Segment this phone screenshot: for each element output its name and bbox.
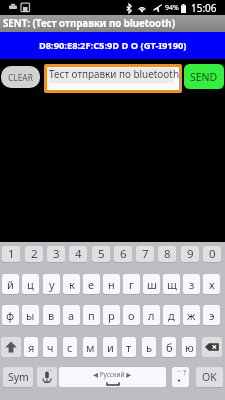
staticText: 2	[31, 246, 38, 262]
button[interactable]: OK	[196, 367, 223, 387]
staticText: Sym	[8, 370, 29, 384]
button[interactable]: х	[203, 274, 220, 294]
button[interactable]: б	[162, 337, 176, 357]
staticText: SEND	[190, 70, 218, 84]
button[interactable]: 8	[158, 246, 176, 262]
staticText: D8:90:E8:2F:C5:9D D O (GT-I9190)	[39, 39, 187, 52]
button[interactable]: 0	[203, 246, 221, 262]
staticText: х	[209, 277, 215, 292]
button[interactable]: Space	[59, 367, 166, 387]
staticText: щ	[167, 277, 177, 292]
button[interactable]: у	[43, 274, 60, 294]
button[interactable]: к	[63, 274, 80, 294]
button[interactable]: ч	[43, 337, 57, 357]
button[interactable]: 9	[181, 246, 199, 262]
staticText: й	[7, 277, 14, 292]
button[interactable]: Voice input	[37, 367, 57, 387]
staticText: л	[148, 308, 155, 323]
staticText: 7	[142, 246, 149, 262]
staticText: 3	[53, 246, 60, 262]
button[interactable]: ь	[142, 337, 156, 357]
staticText: 0	[209, 246, 216, 262]
button[interactable]: щ	[163, 274, 180, 294]
staticText: г	[129, 277, 134, 292]
button[interactable]: ю	[182, 337, 196, 357]
staticText: б	[166, 340, 173, 355]
button[interactable]: 3	[47, 246, 65, 262]
staticText: н	[108, 277, 115, 292]
staticText: 8	[164, 246, 171, 262]
staticText: з	[189, 277, 195, 292]
button[interactable]: а	[63, 305, 80, 325]
staticText: 1	[8, 246, 15, 262]
staticText: 9	[187, 246, 194, 262]
staticText: ф	[6, 308, 15, 323]
staticText: Тест отправки по bluetooth	[49, 67, 179, 80]
button[interactable]: н	[103, 274, 120, 294]
button[interactable]: Shift	[1, 337, 21, 357]
staticText: ж	[187, 308, 196, 323]
button[interactable]: SEND	[184, 64, 224, 89]
staticText: е	[88, 277, 95, 292]
button[interactable]: й	[2, 274, 19, 294]
staticText: ?	[183, 368, 187, 378]
button[interactable]: и	[103, 337, 117, 357]
button[interactable]: д	[163, 305, 180, 325]
staticText: ь	[146, 340, 152, 355]
button[interactable]: 7	[136, 246, 154, 262]
button[interactable]: ш	[143, 274, 160, 294]
button[interactable]: Backspace	[202, 337, 222, 357]
button[interactable]: 2	[25, 246, 43, 262]
staticText: у	[49, 277, 55, 292]
button[interactable]: л	[143, 305, 160, 325]
button[interactable]: р	[103, 305, 120, 325]
staticText: в	[48, 308, 55, 323]
button[interactable]: е	[83, 274, 100, 294]
button[interactable]: ц	[22, 274, 39, 294]
button[interactable]: CLEAR	[1, 66, 40, 88]
staticText: 15:06	[191, 1, 217, 15]
staticText: м	[86, 340, 95, 355]
button[interactable]: Punctuation	[172, 367, 189, 387]
button[interactable]: г	[123, 274, 140, 294]
button[interactable]: я	[24, 337, 38, 357]
staticText: п	[88, 308, 95, 323]
button[interactable]: т	[122, 337, 136, 357]
button[interactable]: с	[63, 337, 77, 357]
staticText: и	[107, 340, 114, 355]
button[interactable]: 4	[69, 246, 87, 262]
button[interactable]: Sym	[3, 367, 33, 387]
button[interactable]: в	[43, 305, 60, 325]
staticText: 5	[98, 246, 105, 262]
staticText: с	[67, 340, 73, 355]
staticText: а	[68, 308, 75, 323]
staticText: ю	[185, 340, 194, 355]
button[interactable]: ф	[2, 305, 19, 325]
staticText: ◀ Русский ▶	[93, 370, 132, 379]
staticText: 6	[120, 246, 127, 262]
staticText: о	[128, 308, 135, 323]
button[interactable]: о	[123, 305, 140, 325]
button[interactable]: ж	[183, 305, 200, 325]
button[interactable]: 6	[114, 246, 132, 262]
staticText: OK	[202, 370, 217, 384]
staticText: CLEAR	[8, 72, 33, 83]
button[interactable]: м	[83, 337, 97, 357]
staticText: ы	[26, 308, 35, 323]
staticText: я	[28, 340, 35, 355]
staticText: э	[209, 308, 215, 323]
staticText: 4	[75, 246, 82, 262]
button[interactable]: ы	[22, 305, 39, 325]
staticText: д	[168, 308, 175, 323]
button[interactable]: з	[183, 274, 200, 294]
button[interactable]: э	[203, 305, 220, 325]
button[interactable]: Тест отправки по bluetooth	[47, 67, 179, 90]
button[interactable]: 5	[92, 246, 110, 262]
button[interactable]: п	[83, 305, 100, 325]
staticText: ц	[27, 277, 34, 292]
staticText: ш	[147, 277, 157, 292]
button[interactable]: 1	[2, 246, 20, 262]
staticText: 94%	[165, 3, 179, 13]
staticText: SENT: (Тест отправки по bluetooth)	[3, 17, 175, 30]
staticText: ч	[47, 340, 54, 355]
